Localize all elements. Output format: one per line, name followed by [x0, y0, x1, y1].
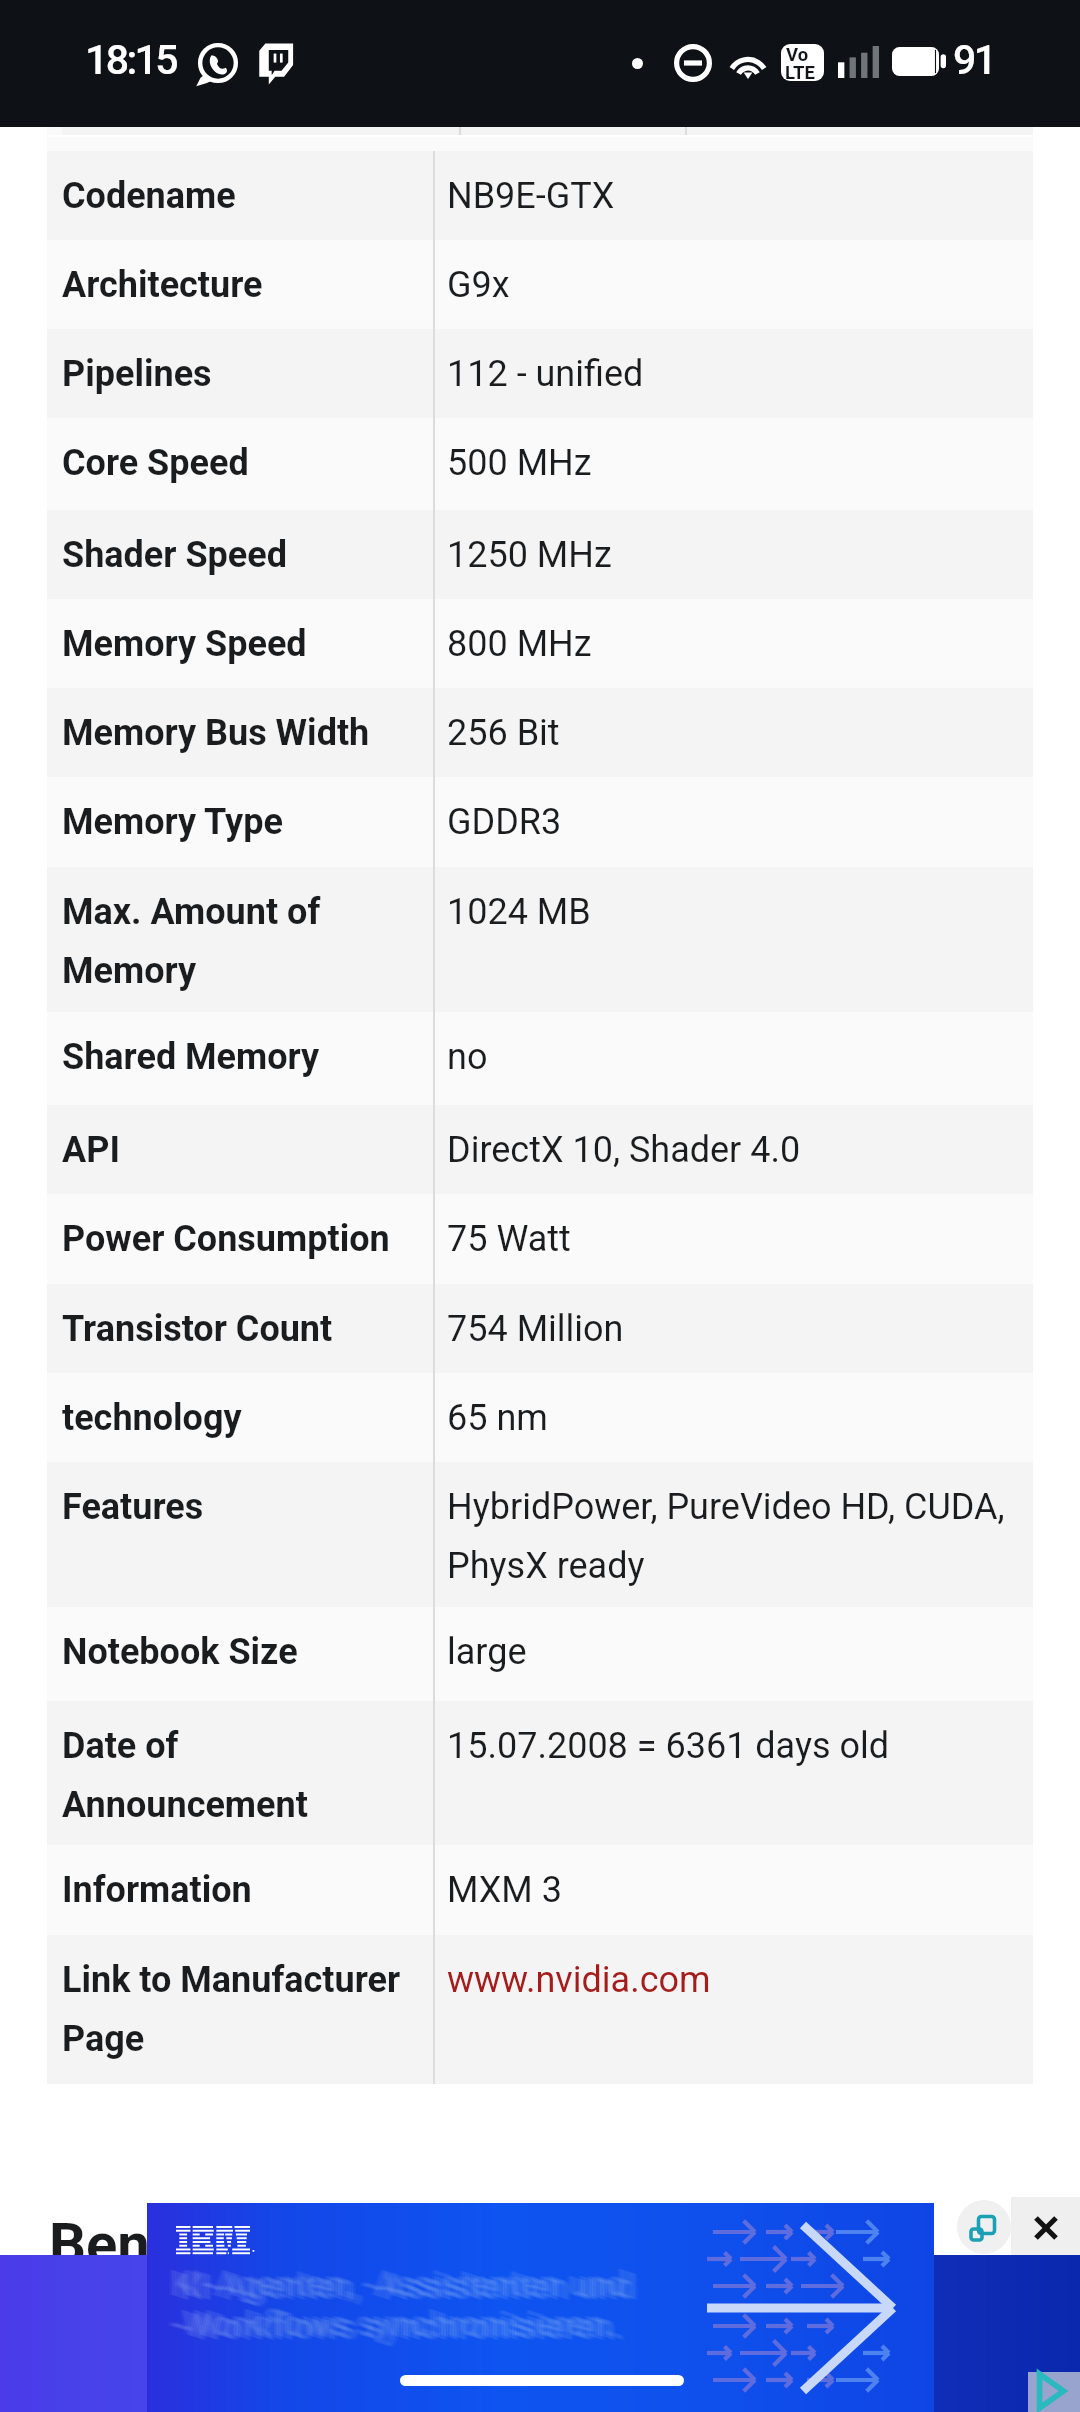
staticText: 1250 MHz [447, 534, 612, 576]
staticText: KI-Agenten, -Assistenten und -Workflows … [178, 2266, 635, 2346]
button[interactable]: Max. Amount of Memory [47, 867, 1033, 1012]
button[interactable]: Architecture [47, 240, 1033, 329]
staticText: www.nvidia.com [447, 1959, 711, 2001]
staticText: Pipelines [62, 353, 212, 395]
staticText: Link to Manufacturer Page [62, 1959, 401, 2060]
button[interactable]: Memory Bus Width [47, 688, 1033, 777]
staticText: 256 Bit [447, 712, 560, 754]
button[interactable]: Close ad [1011, 2197, 1080, 2255]
staticText: no [447, 1036, 488, 1078]
staticText: 75 Watt [447, 1218, 571, 1260]
button[interactable]: API [47, 1105, 1033, 1194]
staticText: KI-Agenten, -Assistenten und -Workflows … [169, 2263, 626, 2343]
staticText: NB9E-GTX [447, 175, 615, 217]
staticText: KI-Agenten, -Assistenten und -Workflows … [172, 2264, 629, 2344]
button[interactable]: Shared Memory [47, 1012, 1033, 1105]
staticText: Core Speed [62, 442, 249, 484]
staticText: large [447, 1631, 527, 1673]
button[interactable]: Ad overlay badge [1028, 2372, 1080, 2412]
staticText: KI-Agenten, -Assistenten und -Workflows … [181, 2267, 638, 2347]
staticText: KI-Agenten, -Assistenten und -Workflows … [183, 2268, 640, 2348]
staticText: 754 Million [447, 1308, 624, 1350]
staticText: Memory Speed [62, 623, 307, 665]
staticText: Shared Memory [62, 1036, 320, 1078]
staticText: Architecture [62, 264, 263, 306]
button[interactable]: Transistor Count [47, 1284, 1033, 1374]
staticText: KI-Agenten, -Assistenten und -Workflows … [173, 2265, 630, 2345]
staticText: G9x [447, 264, 510, 306]
staticText: Information [62, 1869, 252, 1911]
button[interactable]: technology [47, 1373, 1033, 1462]
staticText: Memory Bus Width [62, 712, 370, 754]
button[interactable]: Codename [47, 151, 1033, 240]
staticText: MXM 3 [447, 1869, 562, 1911]
button[interactable]: Core Speed [47, 418, 1033, 511]
button[interactable]: Pipelines [47, 329, 1033, 418]
staticText: 800 MHz [447, 623, 592, 665]
staticText: 112 - unified [447, 353, 644, 395]
staticText: DirectX 10, Shader 4.0 [447, 1129, 801, 1171]
button[interactable]: KI-Agenten, -Assistenten und -Workflows … [147, 2203, 934, 2412]
staticText: KI-Agenten, -Assistenten und -Workflows … [167, 2263, 624, 2343]
staticText: KI-Agenten, -Assistenten und -Workflows … [177, 2266, 634, 2346]
button[interactable]: Memory Speed [47, 599, 1033, 689]
button[interactable]: Shader Speed [47, 510, 1033, 599]
staticText: 500 MHz [447, 442, 592, 484]
staticText: LTE [785, 62, 815, 81]
staticText: KI-Agenten, -Assistenten und -Workflows … [170, 2264, 627, 2344]
button[interactable]: Link to Manufacturer Page [47, 1935, 1033, 2084]
staticText: Max. Amount of Memory [62, 891, 321, 992]
staticText: KI-Agenten, -Assistenten und -Workflows … [180, 2267, 637, 2347]
button[interactable]: Date of Announcement [47, 1701, 1033, 1846]
button[interactable]: Memory Type [47, 777, 1033, 867]
staticText: API [62, 1129, 120, 1171]
button[interactable]: Information [47, 1845, 1033, 1935]
staticText: Features [62, 1486, 204, 1528]
staticText: 91 [953, 36, 995, 84]
staticText: Transistor Count [62, 1308, 333, 1350]
button[interactable]: Power Consumption [47, 1194, 1033, 1284]
staticText: Date of Announcement [62, 1725, 308, 1826]
staticText: 18:15 [85, 36, 177, 84]
staticText: 1024 MB [447, 891, 591, 933]
staticText: 15.07.2008 = 6361 days old [447, 1725, 890, 1767]
staticText: KI-Agenten, -Assistenten und -Workflows … [175, 2265, 632, 2345]
staticText: 65 nm [447, 1397, 548, 1439]
staticText: GDDR3 [447, 801, 562, 843]
staticText: Power Consumption [62, 1218, 390, 1260]
staticText: Vo [786, 44, 809, 66]
staticText: Shader Speed [62, 534, 287, 576]
button[interactable]: Features [47, 1462, 1033, 1607]
staticText: Notebook Size [62, 1631, 298, 1673]
staticText: HybridPower, PureVideo HD, CUDA, PhysX r… [447, 1486, 1005, 1587]
staticText: Memory Type [62, 801, 283, 843]
button[interactable]: Notebook Size [47, 1607, 1033, 1701]
staticText: Bench [49, 2210, 213, 2278]
staticText: Codename [62, 175, 236, 217]
button[interactable]: Ad info [957, 2200, 1011, 2254]
staticText: technology [62, 1397, 242, 1439]
